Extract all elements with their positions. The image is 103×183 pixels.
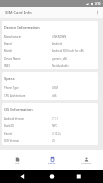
button[interactable]: Android Version xyxy=(4,115,96,122)
button[interactable]: Device Name xyxy=(4,55,96,62)
button[interactable]: Contacts xyxy=(69,150,103,170)
button[interactable]: Kernel xyxy=(4,130,96,137)
staticText: Contacts xyxy=(81,161,91,164)
staticText: Android SDK built for x86 xyxy=(52,49,84,53)
staticText: Android xyxy=(52,42,63,46)
staticText: Build ID xyxy=(4,124,52,128)
staticText: 25 xyxy=(52,139,56,143)
button[interactable]: Build ID xyxy=(4,122,96,130)
staticText: generic_x86 xyxy=(52,57,68,61)
staticText: x86 xyxy=(52,94,57,98)
staticText: Device Name xyxy=(4,57,52,61)
button[interactable]: Brand xyxy=(4,40,96,47)
staticText: Device xyxy=(48,161,56,164)
button[interactable]: More options xyxy=(92,7,103,18)
button[interactable]: IMEI xyxy=(4,62,96,69)
staticText: Not Available xyxy=(52,64,69,68)
staticText: NYC xyxy=(52,124,58,128)
staticText: Android Version xyxy=(4,117,52,121)
staticText: SIM Card Info xyxy=(5,10,32,16)
button[interactable]: Manufacturer xyxy=(4,33,96,40)
staticText: Model xyxy=(4,49,52,53)
staticText: OS Information xyxy=(4,107,33,112)
staticText: 2:10 xyxy=(95,2,101,6)
staticText: IMEI xyxy=(4,64,52,68)
button[interactable]: Phone Type xyxy=(4,84,96,92)
button[interactable]: SDK Version xyxy=(4,137,96,144)
staticText: 7.1.1 xyxy=(52,117,59,121)
staticText: SIM xyxy=(15,161,20,164)
staticText: Phone Type xyxy=(4,86,52,90)
staticText: Device Information xyxy=(4,25,40,30)
button[interactable]: Device xyxy=(35,150,69,170)
staticText: CPU Architecture xyxy=(4,94,52,98)
staticText: 3.10.0+ xyxy=(52,132,62,136)
staticText: UNKNOWN xyxy=(52,35,67,39)
staticText: GSM xyxy=(52,86,58,90)
staticText: SDK Version xyxy=(4,139,52,143)
button[interactable]: Model xyxy=(4,47,96,55)
button[interactable]: CPU Architecture xyxy=(4,92,96,99)
staticText: Kernel xyxy=(4,132,52,136)
staticText: Brand xyxy=(4,42,52,46)
button[interactable]: SIM xyxy=(0,150,34,170)
staticText: Specs xyxy=(4,76,15,81)
staticText: Manufacturer xyxy=(4,35,52,39)
